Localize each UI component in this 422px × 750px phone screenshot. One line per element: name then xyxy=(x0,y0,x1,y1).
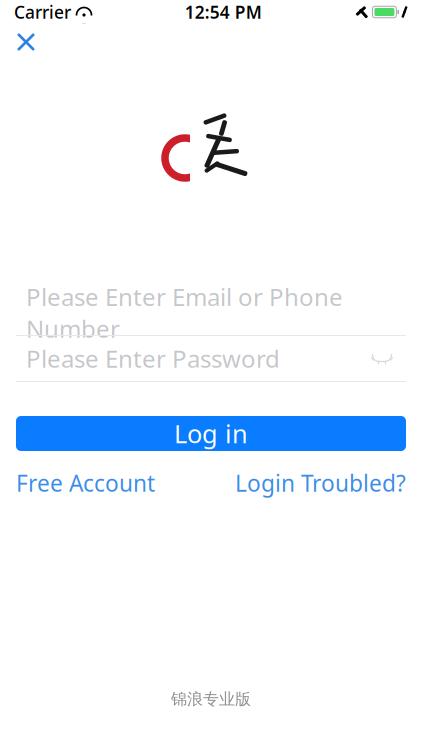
staticText: Carrier xyxy=(14,0,71,23)
button[interactable]: Please Enter Password xyxy=(16,336,406,381)
staticText: Free Account xyxy=(16,468,155,498)
staticText: 12:54 PM xyxy=(185,0,262,23)
staticText: Login Troubled? xyxy=(235,468,406,498)
button[interactable]: Close xyxy=(2,24,50,60)
staticText: Please Enter Email or Phone Number xyxy=(26,281,343,344)
staticText: 锦浪专业版 xyxy=(171,689,251,709)
staticText: Log in xyxy=(174,417,248,450)
button[interactable]: Free Account xyxy=(16,462,155,504)
staticText: Please Enter Password xyxy=(26,343,280,374)
button[interactable]: Login Troubled? xyxy=(235,462,406,504)
button[interactable]: Please Enter Email or Phone Number xyxy=(16,290,406,335)
button[interactable]: Log in xyxy=(16,416,406,451)
